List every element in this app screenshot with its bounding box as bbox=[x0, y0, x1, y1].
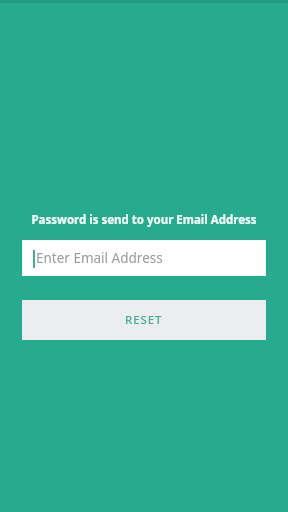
staticText: Enter Email Address bbox=[36, 249, 163, 267]
staticText: RESET bbox=[125, 312, 163, 328]
button[interactable]: Enter Email Address bbox=[22, 240, 266, 276]
staticText: Password is send to your Email Address bbox=[14, 212, 274, 228]
button[interactable]: Reset password bbox=[22, 300, 266, 340]
